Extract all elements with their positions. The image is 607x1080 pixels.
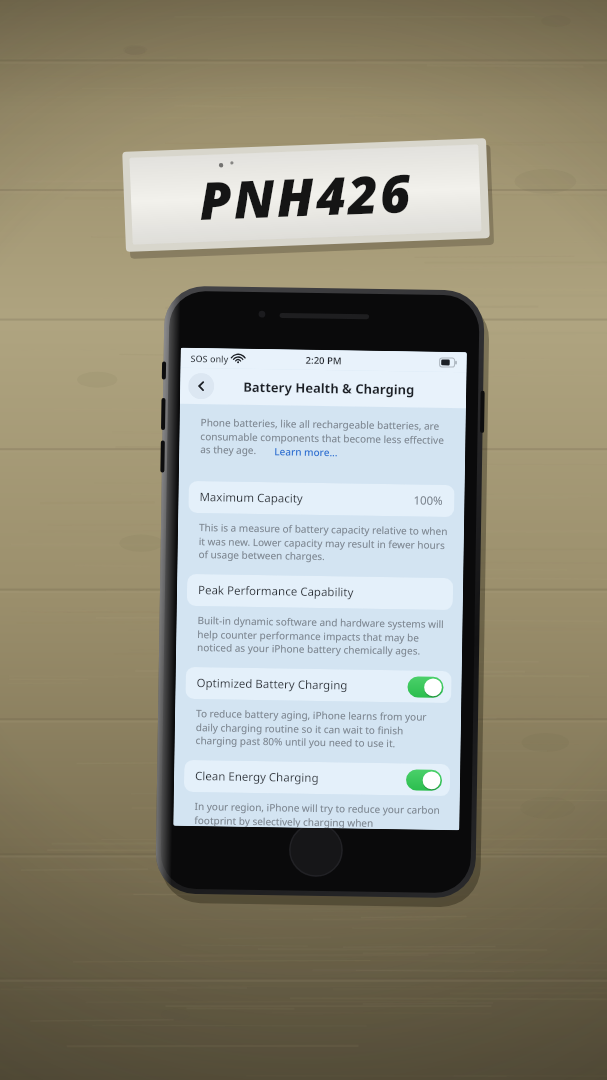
staticText: 100%: [413, 492, 443, 509]
staticText: Optimized Battery Charging: [196, 675, 348, 693]
staticText: Built-in dynamic software and hardware s…: [197, 613, 447, 658]
staticText: 2:20 PM: [305, 354, 343, 367]
staticText: Learn more...: [274, 444, 338, 459]
button[interactable]: Clean Energy Charging: [184, 760, 450, 796]
staticText: To reduce battery aging, iPhone learns f…: [195, 706, 445, 751]
button[interactable]: Peak Performance Capability: [187, 574, 453, 610]
button[interactable]: Maximum Capacity: [188, 481, 455, 517]
staticText: Phone batteries, like all rechargeable b…: [200, 415, 450, 460]
staticText: SOS only: [191, 352, 229, 364]
button[interactable]: Toggle: [406, 769, 442, 791]
staticText: Peak Performance Capability: [198, 582, 354, 600]
staticText: Maximum Capacity: [199, 489, 304, 507]
button[interactable]: Optimized Battery Charging: [185, 667, 452, 703]
button[interactable]: Back: [188, 373, 214, 399]
staticText: PNH426: [198, 156, 414, 235]
staticText: Clean Energy Charging: [195, 768, 319, 786]
button[interactable]: Learn more...: [274, 444, 338, 459]
staticText: Battery Health & Charging: [243, 378, 415, 398]
staticText: In your region, iPhone will try to reduc…: [194, 799, 444, 830]
staticText: This is a measure of battery capacity re…: [198, 520, 448, 565]
button[interactable]: Toggle: [407, 676, 444, 698]
